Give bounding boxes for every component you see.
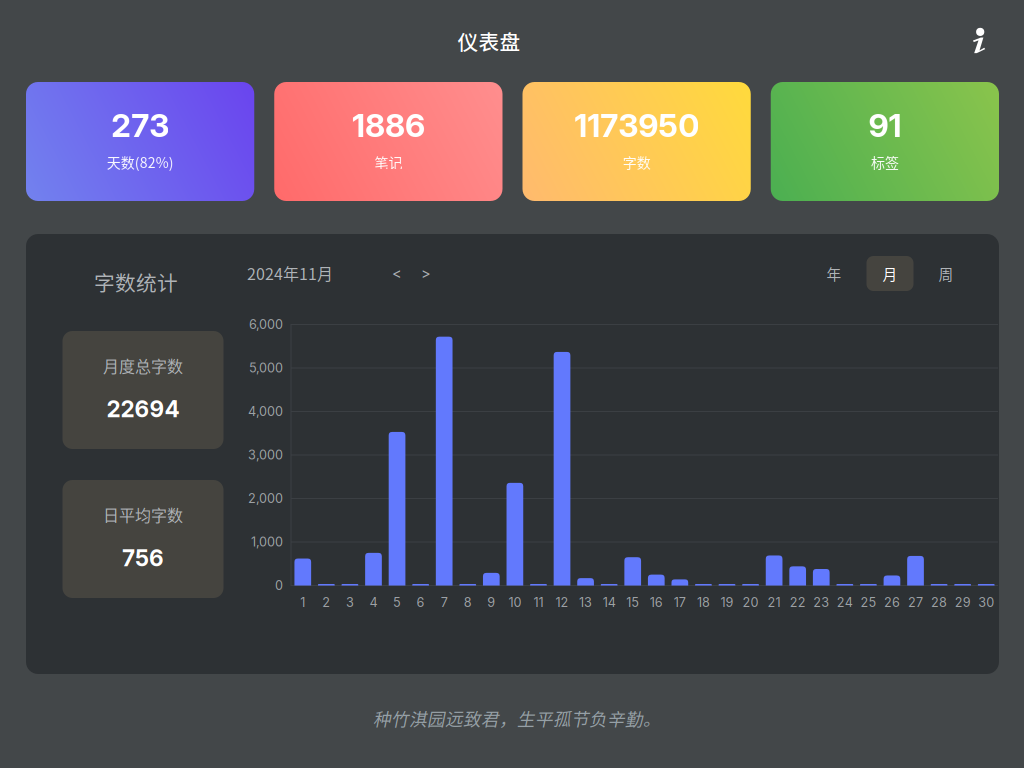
staticText: 21 [768,595,781,610]
button[interactable]: 1886 [274,82,502,201]
staticText: 3,000 [248,447,283,463]
button[interactable]: Info [957,19,1001,63]
staticText: 字数统计 [94,267,178,297]
staticText: 1 [300,595,305,610]
staticText: < [392,264,402,282]
staticText: 16 [650,595,663,610]
staticText: 273 [111,106,169,145]
staticText: 月 [882,263,897,284]
staticText: 5,000 [249,360,283,376]
staticText: 26 [884,595,900,610]
staticText: 4 [369,595,377,610]
staticText: 7 [441,595,448,610]
staticText: 6,000 [249,317,283,332]
staticText: 17 [674,595,686,610]
staticText: 22694 [106,395,179,423]
staticText: 5 [393,595,401,610]
staticText: 2 [322,595,330,610]
button[interactable]: 273 [26,82,254,201]
staticText: 年 [826,263,841,284]
staticText: 91 [868,106,901,145]
staticText: 6 [417,595,425,610]
staticText: 3 [346,595,354,610]
button[interactable]: 1173950 [522,82,751,201]
staticText: 14 [603,595,616,610]
staticText: 29 [955,595,971,610]
staticText: 4,000 [248,404,283,419]
button[interactable]: 91 [771,82,999,201]
staticText: 0 [275,578,283,593]
staticText: 日平均字数 [103,503,183,526]
staticText: > [421,264,431,282]
staticText: 27 [908,595,923,610]
staticText: 15 [626,595,639,610]
button[interactable]: Next period [413,259,439,287]
staticText: 字数 [623,152,651,172]
staticText: 种竹淇园远致君，生平孤节负辛勤。 [373,705,661,731]
staticText: 23 [813,595,829,610]
button[interactable]: Previous period [384,259,410,287]
staticText: 10 [508,595,521,610]
button[interactable]: 年 [810,256,857,291]
staticText: 22 [790,595,806,610]
staticText: 25 [860,595,876,610]
button[interactable]: 周 [922,256,969,291]
staticText: 13 [579,595,592,610]
staticText: 标签 [871,152,899,172]
staticText: 19 [720,595,733,610]
staticText: 24 [837,595,853,610]
staticText: 11 [533,595,543,610]
staticText: 1886 [352,106,425,145]
staticText: 仪表盘 [457,26,520,56]
staticText: 1,000 [251,534,283,550]
staticText: 12 [555,595,568,610]
staticText: 756 [122,544,164,572]
staticText: 30 [978,595,994,610]
staticText: 周 [938,263,953,284]
button[interactable]: 月 [866,256,913,291]
staticText: 9 [487,595,495,610]
staticText: 2,000 [248,491,283,506]
staticText: 28 [931,595,947,610]
staticText: 20 [742,595,758,610]
staticText: 天数(82%) [107,152,174,172]
staticText: 1173950 [574,106,699,145]
staticText: 18 [697,595,710,610]
staticText: 8 [464,595,472,610]
staticText: 笔记 [374,152,402,172]
staticText: 2024年11月 [247,261,333,285]
staticText: 月度总字数 [103,354,183,377]
